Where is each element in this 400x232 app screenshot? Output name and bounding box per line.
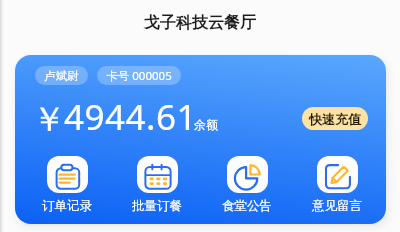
button[interactable]: 订单记录 (37, 156, 97, 214)
staticText: 批量订餐 (132, 198, 182, 214)
staticText: 快速充值 (309, 111, 361, 127)
staticText: ￥ (32, 98, 66, 141)
button[interactable]: 快速充值 (302, 107, 368, 130)
staticText: 余额 (194, 117, 218, 132)
staticText: 卢斌尉 (44, 69, 79, 83)
staticText: 意见留言 (312, 198, 362, 214)
staticText: 4944.61 (64, 93, 198, 141)
button[interactable]: 卡号 000005 (97, 66, 181, 85)
button[interactable]: 意见留言 (307, 156, 367, 214)
button[interactable]: 卢斌尉 (35, 66, 88, 85)
button[interactable]: 食堂公告 (217, 156, 277, 214)
staticText: 食堂公告 (222, 198, 272, 214)
button[interactable]: 批量订餐 (127, 156, 187, 214)
staticText: 卡号 000005 (106, 68, 172, 84)
staticText: 订单记录 (42, 198, 92, 214)
staticText: 戈子科技云餐厅 (144, 13, 256, 33)
